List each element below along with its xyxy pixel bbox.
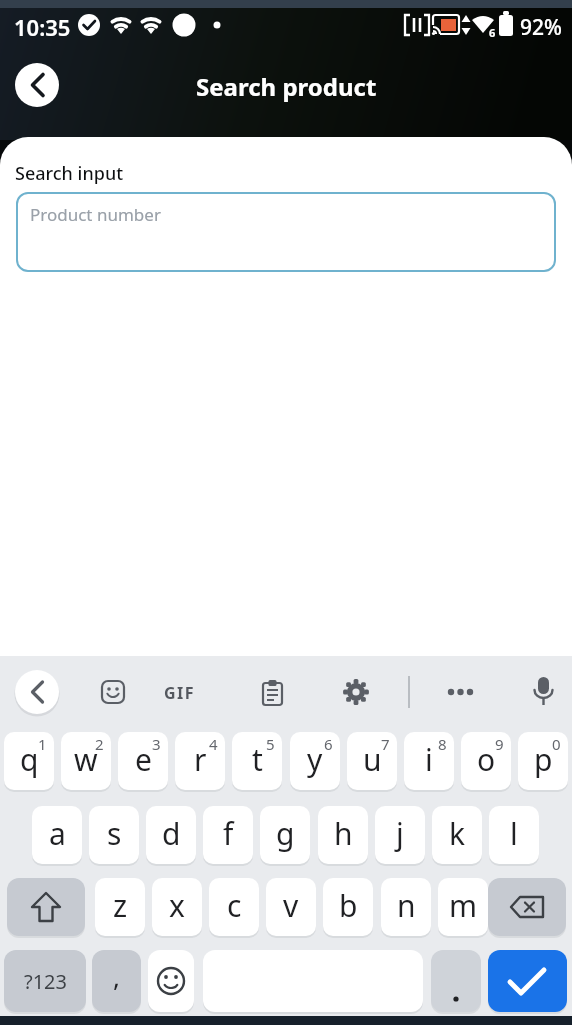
button[interactable]: , [92, 950, 141, 1012]
staticText: p [534, 739, 553, 780]
staticText: m [449, 885, 478, 926]
staticText: f [223, 813, 234, 854]
staticText: 8 [438, 734, 447, 754]
button[interactable]: u [347, 732, 397, 790]
staticText: 6 [489, 25, 496, 40]
staticText: 0 [552, 734, 561, 754]
staticText: Product number [30, 203, 161, 226]
staticText: Search input [15, 161, 124, 186]
staticText: b [339, 885, 358, 926]
button[interactable]: r [175, 732, 225, 790]
staticText: 9 [495, 734, 504, 754]
staticText: 2 [95, 734, 104, 754]
button[interactable] [488, 878, 566, 936]
staticText: h [334, 813, 353, 854]
button[interactable]: b [323, 878, 373, 936]
button[interactable]: e [118, 732, 168, 790]
staticText: n [397, 885, 416, 926]
button[interactable]: x [152, 878, 202, 936]
button[interactable]: n [381, 878, 431, 936]
button[interactable]: v [266, 878, 316, 936]
staticText: r [194, 739, 207, 780]
button[interactable]: o [461, 732, 511, 790]
staticText: i [425, 739, 433, 780]
button[interactable]: h [318, 806, 368, 864]
button[interactable] [15, 670, 59, 714]
button[interactable]: s [89, 806, 139, 864]
staticText: 1 [38, 734, 47, 754]
staticText: x [169, 885, 185, 926]
staticText: v [283, 885, 299, 926]
staticText: s [107, 813, 122, 854]
staticText: e [135, 739, 152, 780]
staticText: k [449, 813, 466, 854]
staticText: Search product [196, 70, 377, 103]
button[interactable] [15, 63, 59, 107]
button[interactable]: q [4, 732, 54, 790]
button[interactable]: l [489, 806, 539, 864]
button[interactable]: j [375, 806, 425, 864]
button[interactable] [488, 950, 567, 1012]
staticText: 3 [152, 734, 161, 754]
staticText: y [307, 739, 323, 780]
staticText: l [510, 813, 518, 854]
button[interactable] [7, 878, 85, 936]
staticText: 92% [520, 13, 562, 42]
button[interactable]: k [432, 806, 482, 864]
staticText: z [113, 885, 128, 926]
button[interactable]: d [146, 806, 196, 864]
staticText: 5 [266, 734, 275, 754]
staticText: t [252, 739, 263, 780]
button[interactable]: ?123 [4, 950, 86, 1012]
button[interactable] [148, 950, 194, 1012]
button[interactable]: a [32, 806, 82, 864]
button[interactable]: z [95, 878, 145, 936]
staticText: a [49, 813, 66, 854]
staticText: 6 [324, 734, 333, 754]
staticText: u [363, 739, 382, 780]
button[interactable]: g [260, 806, 310, 864]
staticText: 4 [209, 734, 218, 754]
button[interactable] [431, 950, 481, 1012]
staticText: ?123 [24, 968, 67, 995]
button[interactable]: f [203, 806, 253, 864]
button[interactable]: Product number [16, 192, 556, 272]
button[interactable]: GIF [164, 682, 196, 704]
staticText: w [74, 739, 98, 780]
button[interactable]: y [290, 732, 340, 790]
staticText: , [113, 959, 120, 994]
staticText: c [227, 885, 242, 926]
staticText: q [20, 739, 39, 780]
staticText: j [396, 813, 404, 854]
button[interactable]: p [518, 732, 568, 790]
button[interactable]: c [209, 878, 259, 936]
staticText: d [162, 813, 181, 854]
staticText: 10:35 [14, 12, 71, 42]
staticText: o [477, 739, 496, 780]
staticText: 7 [381, 734, 390, 754]
button[interactable]: w [61, 732, 111, 790]
staticText: g [276, 813, 295, 854]
button[interactable]: m [438, 878, 488, 936]
button[interactable]: t [232, 732, 282, 790]
button[interactable]: i [404, 732, 454, 790]
